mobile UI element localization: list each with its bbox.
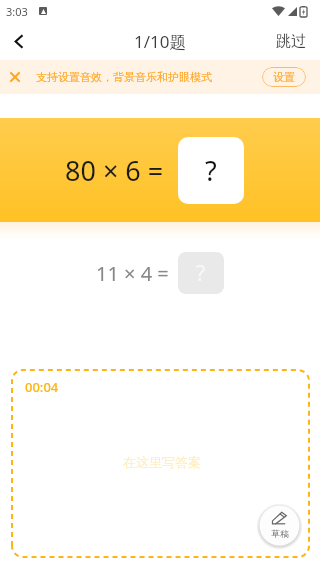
button[interactable]: 设置 <box>262 67 306 87</box>
staticText: 80 × 6 = <box>65 152 164 189</box>
button[interactable]: 00:04 <box>11 369 309 557</box>
staticText: ? <box>205 152 217 189</box>
staticText: 00:04 <box>25 378 59 396</box>
staticText: ? <box>196 259 206 288</box>
staticText: 跳过 <box>276 32 306 51</box>
staticText: 设置 <box>273 70 295 84</box>
staticText: 草稿 <box>271 528 289 539</box>
button[interactable]: 草稿 <box>259 505 300 546</box>
staticText: 11 × 4 = <box>96 260 169 287</box>
staticText: 在这里写答案 <box>123 454 201 470</box>
staticText: 3:03 <box>6 4 28 19</box>
button[interactable]: 跳过 <box>262 24 320 59</box>
button[interactable]: Close <box>8 70 22 84</box>
staticText: 1/10题 <box>134 30 187 53</box>
staticText: 支持设置音效，背景音乐和护眼模式 <box>36 70 212 84</box>
button[interactable]: Back <box>0 22 38 60</box>
